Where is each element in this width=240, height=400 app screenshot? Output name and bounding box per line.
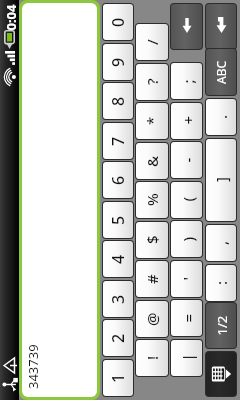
button[interactable]: Enter (206, 4, 236, 49)
staticText: 4 (107, 254, 129, 264)
button[interactable] (103, 83, 133, 119)
staticText: ; (177, 78, 197, 83)
staticText: 5 (107, 215, 129, 225)
button[interactable] (103, 202, 133, 238)
staticText: , (211, 240, 231, 245)
button[interactable] (103, 44, 133, 80)
staticText: $ (142, 235, 162, 244)
staticText: 343739 (24, 345, 40, 389)
button[interactable] (171, 340, 202, 376)
button[interactable] (22, 3, 97, 397)
button[interactable] (136, 103, 168, 139)
button[interactable] (136, 64, 168, 100)
button[interactable] (171, 221, 202, 257)
staticText: # (142, 274, 162, 284)
staticText: - (177, 157, 197, 162)
staticText: 6 (107, 175, 129, 185)
button[interactable] (103, 4, 133, 40)
button[interactable] (103, 162, 133, 198)
staticText: : (211, 280, 231, 285)
staticText: ( (177, 196, 197, 201)
button[interactable] (103, 320, 133, 356)
staticText: + (177, 115, 197, 124)
button[interactable] (171, 142, 202, 178)
button[interactable] (136, 143, 168, 179)
button[interactable]: Symbols page (206, 303, 236, 348)
staticText: 1 (107, 373, 129, 383)
button[interactable]: Switch input method (206, 352, 236, 396)
staticText: ) (177, 236, 197, 241)
button[interactable] (136, 301, 168, 337)
button[interactable] (171, 300, 202, 336)
staticText: ' (177, 276, 197, 280)
staticText: = (177, 313, 197, 322)
button[interactable] (206, 225, 236, 261)
button[interactable] (136, 24, 168, 60)
staticText: 8 (107, 96, 129, 106)
staticText: | (177, 352, 197, 361)
button[interactable] (171, 63, 202, 99)
staticText: ] (211, 177, 231, 182)
staticText: . (211, 114, 231, 119)
staticText: * (142, 116, 162, 125)
staticText: 0 (107, 17, 129, 27)
staticText: % (142, 193, 162, 206)
button[interactable] (103, 360, 133, 396)
button[interactable] (136, 340, 168, 376)
button[interactable] (136, 222, 168, 258)
staticText: ? (142, 78, 162, 85)
staticText: ABC (213, 60, 229, 84)
button[interactable] (103, 241, 133, 277)
button[interactable] (171, 182, 202, 218)
staticText: & (142, 155, 162, 167)
button[interactable] (206, 99, 236, 135)
button[interactable] (136, 261, 168, 297)
staticText: 9 (107, 57, 129, 67)
button[interactable] (171, 261, 202, 297)
staticText: 7 (107, 136, 129, 146)
staticText: / (142, 39, 162, 45)
button[interactable] (103, 281, 133, 317)
staticText: @ (142, 312, 162, 326)
button[interactable]: Letters (206, 49, 236, 95)
staticText: ! (142, 355, 162, 360)
button[interactable] (206, 139, 236, 221)
button[interactable]: Down (171, 4, 202, 49)
button[interactable] (103, 123, 133, 159)
staticText: 1/2 (212, 315, 230, 335)
staticText: 3 (107, 294, 129, 304)
button[interactable] (136, 182, 168, 218)
staticText: 0:04 (1, 4, 19, 30)
staticText: 2 (107, 333, 129, 343)
button[interactable] (171, 103, 202, 139)
button[interactable] (206, 265, 236, 301)
